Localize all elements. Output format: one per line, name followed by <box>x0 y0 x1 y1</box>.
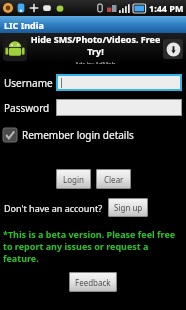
button[interactable]: Advertisement <box>0 33 186 64</box>
staticText: Login <box>63 174 84 185</box>
staticText: Sign up <box>114 202 143 213</box>
button[interactable]: Remember login details <box>3 128 186 142</box>
button[interactable]: Clear <box>96 169 131 189</box>
button[interactable]: Login <box>56 169 91 189</box>
staticText: Clear <box>104 174 124 185</box>
staticText: Ads by AdMob <box>75 60 116 64</box>
staticText: Username <box>4 76 56 90</box>
button[interactable] <box>58 76 180 89</box>
staticText: *This is a beta version. Please feel fre… <box>3 228 183 264</box>
staticText: Feedback <box>75 277 111 288</box>
button[interactable]: Feedback <box>69 272 117 292</box>
button[interactable]: Download <box>163 39 183 59</box>
staticText: 1:44 PM <box>149 2 184 14</box>
staticText: Hide SMS/Photo/Videos. Free Try! <box>30 33 161 57</box>
staticText: Remember login details <box>22 128 134 142</box>
staticText: LIC India <box>4 19 44 31</box>
button[interactable] <box>56 99 182 116</box>
staticText: Password <box>4 101 56 115</box>
staticText: Don't have an account? <box>4 202 103 214</box>
button[interactable]: Sign up <box>108 198 148 217</box>
